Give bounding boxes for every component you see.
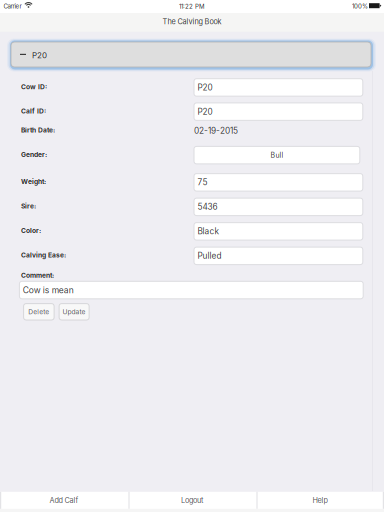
staticText: Help — [312, 496, 327, 505]
staticText: P20 — [32, 50, 47, 60]
staticText: Pulled — [197, 251, 221, 261]
staticText: Add Calf — [49, 496, 78, 505]
staticText: Cow is mean — [23, 285, 74, 295]
staticText: Birth Date: — [21, 126, 55, 134]
staticText: Color: — [21, 227, 41, 235]
button[interactable]: Logout — [128, 492, 256, 509]
staticText: Cow ID: — [21, 83, 47, 91]
button[interactable]: Delete — [24, 304, 54, 320]
staticText: Bull — [270, 151, 283, 159]
staticText: Calving Ease: — [21, 251, 66, 259]
button[interactable]: Update — [59, 304, 89, 320]
staticText: Black — [197, 226, 219, 236]
staticText: 75 — [197, 177, 207, 187]
staticText: Carrier — [3, 3, 21, 10]
staticText: P20 — [197, 107, 212, 117]
staticText: 11:22 PM — [179, 3, 205, 10]
staticText: Logout — [181, 496, 203, 505]
staticText: The Calving Book — [162, 17, 221, 26]
staticText: 100% — [352, 3, 368, 10]
button[interactable]: Add Calf — [0, 492, 128, 509]
staticText: Weight: — [21, 178, 46, 186]
staticText: Calf ID: — [21, 107, 46, 115]
button[interactable]: Help — [256, 492, 384, 509]
staticText: 02-19-2015 — [194, 126, 238, 136]
staticText: Delete — [28, 308, 49, 316]
button[interactable]: P20 — [11, 42, 371, 67]
staticText: Gender: — [21, 150, 47, 159]
staticText: P20 — [197, 82, 212, 92]
staticText: 5436 — [197, 202, 217, 212]
staticText: Update — [63, 308, 86, 316]
staticText: Sire: — [21, 202, 36, 210]
staticText: Comment: — [21, 271, 54, 279]
